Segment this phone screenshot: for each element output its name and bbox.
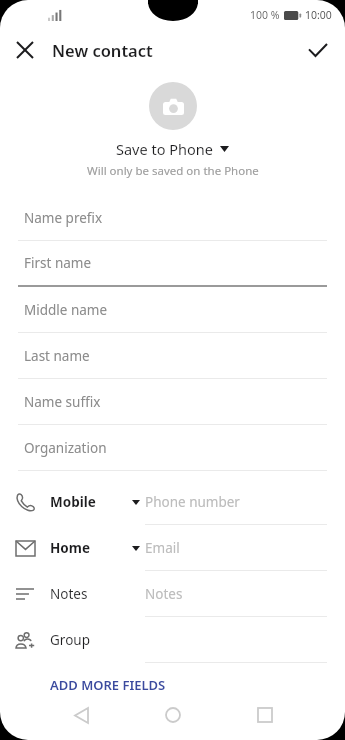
staticText: Last name bbox=[24, 347, 90, 365]
button[interactable]: Group bbox=[0, 617, 345, 663]
button[interactable]: Recents bbox=[219, 690, 311, 740]
staticText: Name prefix bbox=[24, 209, 103, 227]
button[interactable]: ADD MORE FIELDS bbox=[0, 669, 345, 701]
staticText: ADD MORE FIELDS bbox=[50, 676, 166, 694]
staticText: 100 % bbox=[250, 8, 280, 22]
button[interactable]: Phone type bbox=[0, 479, 345, 525]
button[interactable]: Close bbox=[6, 31, 44, 69]
button[interactable]: Notes bbox=[0, 571, 345, 617]
button[interactable]: Name suffix bbox=[18, 379, 327, 425]
button[interactable]: Middle name bbox=[18, 287, 327, 333]
staticText: Save to Phone bbox=[116, 139, 213, 159]
staticText: Organization bbox=[24, 439, 107, 457]
staticText: First name bbox=[24, 254, 92, 272]
staticText: 10:00 bbox=[305, 8, 332, 22]
button[interactable]: Organization bbox=[18, 425, 327, 471]
staticText: Notes bbox=[145, 585, 183, 603]
staticText: Middle name bbox=[24, 301, 108, 319]
button[interactable]: Save to Phone bbox=[116, 139, 229, 159]
staticText: Mobile bbox=[50, 493, 96, 511]
button[interactable]: Name prefix bbox=[18, 195, 327, 241]
staticText: Name suffix bbox=[24, 393, 101, 411]
staticText: Home bbox=[50, 539, 90, 557]
button[interactable]: First name bbox=[18, 241, 327, 287]
staticText: Phone number bbox=[145, 493, 240, 511]
button[interactable]: Email type bbox=[0, 525, 345, 571]
staticText: Notes bbox=[50, 585, 88, 603]
button[interactable]: Add photo bbox=[149, 82, 197, 130]
button[interactable]: Home bbox=[127, 690, 219, 740]
button[interactable]: Save bbox=[299, 31, 337, 69]
staticText: Will only be saved on the Phone bbox=[87, 163, 259, 179]
staticText: Group bbox=[50, 631, 90, 649]
button[interactable]: Last name bbox=[18, 333, 327, 379]
staticText: Email bbox=[145, 539, 180, 557]
staticText: New contact bbox=[52, 39, 153, 61]
button[interactable]: Back bbox=[35, 690, 127, 740]
